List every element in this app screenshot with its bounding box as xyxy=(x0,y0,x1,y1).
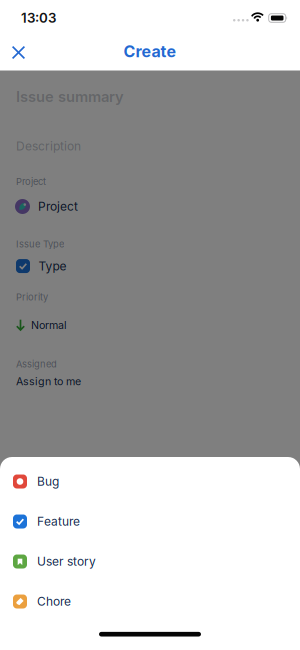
staticText: Feature xyxy=(37,514,80,529)
staticText: Bug xyxy=(37,474,59,489)
staticText: Priority xyxy=(16,291,48,302)
staticText: Chore xyxy=(37,594,71,609)
button[interactable]: Chore xyxy=(0,581,300,621)
staticText: Project xyxy=(16,176,46,187)
staticText: User story xyxy=(37,554,96,569)
button[interactable]: Close xyxy=(0,35,25,59)
staticText: Issue Type xyxy=(16,238,64,249)
staticText: Normal xyxy=(31,319,67,331)
staticText: Assign to me xyxy=(16,375,81,388)
button[interactable]: Bug xyxy=(0,461,300,501)
staticText: Assigned xyxy=(16,358,57,369)
staticText: Create xyxy=(123,42,176,61)
button[interactable]: Feature xyxy=(0,501,300,541)
staticText: Description xyxy=(16,139,81,153)
staticText: Issue summary xyxy=(16,88,124,105)
staticText: Project xyxy=(38,199,78,214)
staticText: Type xyxy=(38,259,66,273)
staticText: 13:03 xyxy=(21,10,56,26)
button[interactable]: User story xyxy=(0,541,300,581)
